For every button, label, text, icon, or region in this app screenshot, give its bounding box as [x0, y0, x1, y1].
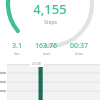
staticText: 4106 — [32, 61, 42, 66]
button[interactable]: 4,155 — [33, 0, 67, 26]
button[interactable]: 00:37 — [69, 41, 89, 56]
staticText: 3.1 — [12, 41, 22, 51]
button[interactable]: Activity chart — [0, 64, 100, 100]
button[interactable]: Step goal progress — [0, 0, 100, 60]
staticText: km — [14, 51, 20, 56]
staticText: 4,155 — [33, 0, 67, 18]
staticText: 163.76 — [35, 41, 57, 51]
button[interactable]: 163.76 — [34, 41, 58, 56]
staticText: 00:37 — [70, 41, 88, 51]
staticText: kcal — [43, 51, 50, 56]
staticText: Steps — [44, 19, 57, 26]
button[interactable]: 4106 — [32, 61, 42, 66]
staticText: time — [75, 51, 83, 56]
button[interactable]: 3.1 — [11, 41, 23, 56]
